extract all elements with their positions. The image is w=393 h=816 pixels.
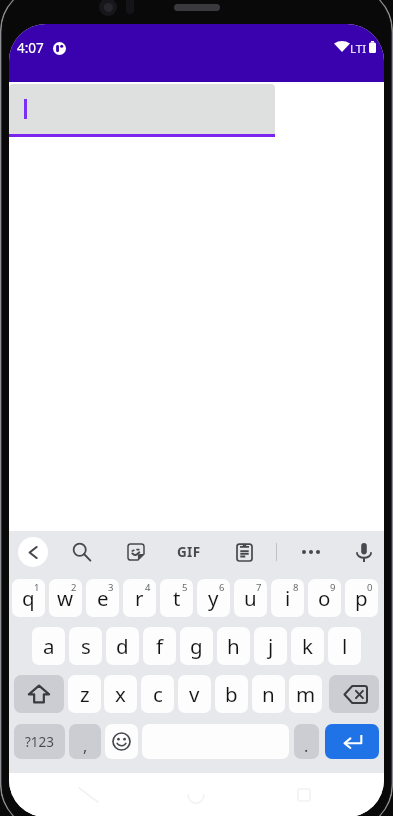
button[interactable]: a xyxy=(32,627,65,665)
staticText: 4:07 xyxy=(17,39,44,57)
button[interactable]: b xyxy=(215,675,248,713)
staticText: p xyxy=(355,584,368,612)
staticText: g xyxy=(190,632,203,660)
staticText: e xyxy=(97,584,109,612)
staticText: c xyxy=(153,680,163,708)
button[interactable]: e xyxy=(86,579,119,617)
button[interactable]: g xyxy=(180,627,213,665)
button[interactable]: m xyxy=(289,675,322,713)
staticText: y xyxy=(208,584,219,612)
button[interactable]: j xyxy=(254,627,287,665)
staticText: u xyxy=(244,584,257,612)
button[interactable]: u xyxy=(234,579,267,617)
button[interactable]: Enter xyxy=(325,724,379,759)
staticText: a xyxy=(43,632,55,660)
button[interactable]: x xyxy=(104,675,137,713)
staticText: 6 xyxy=(219,581,225,594)
button[interactable]: Clipboard xyxy=(229,537,259,567)
staticText: 1 xyxy=(34,581,40,594)
button[interactable]: i xyxy=(271,579,304,617)
staticText: 5 xyxy=(182,581,188,594)
button[interactable]: . xyxy=(294,724,319,759)
button[interactable]: h xyxy=(217,627,250,665)
staticText: b xyxy=(225,680,238,708)
button[interactable]: Search xyxy=(67,537,97,567)
button[interactable]: l xyxy=(328,627,361,665)
staticText: , xyxy=(83,735,88,757)
staticText: l xyxy=(342,632,348,660)
staticText: d xyxy=(116,632,129,660)
button[interactable]: z xyxy=(68,675,101,713)
button[interactable]: Emoji xyxy=(105,724,138,759)
button[interactable]: Voice input xyxy=(349,537,379,567)
button[interactable]: w xyxy=(49,579,82,617)
button[interactable] xyxy=(9,84,275,135)
button[interactable]: Stickers xyxy=(121,537,151,567)
staticText: GIF xyxy=(177,543,201,561)
button[interactable]: c xyxy=(141,675,174,713)
staticText: o xyxy=(318,584,331,612)
button[interactable]: p xyxy=(345,579,378,617)
button[interactable]: More options xyxy=(296,537,326,567)
staticText: ?123 xyxy=(25,733,55,751)
button[interactable]: ?123 xyxy=(14,724,65,759)
staticText: z xyxy=(80,680,90,708)
staticText: LTI xyxy=(350,41,367,57)
staticText: . xyxy=(304,735,309,757)
button[interactable]: GIF xyxy=(174,537,204,567)
button[interactable]: v xyxy=(178,675,211,713)
staticText: 8 xyxy=(293,581,299,594)
staticText: 9 xyxy=(330,581,336,594)
button[interactable]: r xyxy=(123,579,156,617)
staticText: j xyxy=(268,632,274,660)
button[interactable]: n xyxy=(252,675,285,713)
staticText: 4 xyxy=(145,581,151,594)
staticText: r xyxy=(135,584,144,612)
button[interactable]: q xyxy=(12,579,45,617)
staticText: 2 xyxy=(71,581,77,594)
button[interactable]: d xyxy=(106,627,139,665)
staticText: 7 xyxy=(256,581,262,594)
button[interactable]: f xyxy=(143,627,176,665)
staticText: x xyxy=(115,680,126,708)
button[interactable]: Back xyxy=(18,537,48,567)
button[interactable]: Backspace xyxy=(329,675,379,713)
staticText: k xyxy=(302,632,313,660)
button[interactable]: , xyxy=(69,724,101,759)
staticText: v xyxy=(189,680,200,708)
staticText: n xyxy=(262,680,275,708)
staticText: m xyxy=(296,680,316,708)
button[interactable]: Shift xyxy=(14,675,64,713)
button[interactable]: s xyxy=(69,627,102,665)
staticText: t xyxy=(173,584,181,612)
button[interactable]: t xyxy=(160,579,193,617)
staticText: 3 xyxy=(108,581,114,594)
button[interactable]: k xyxy=(291,627,324,665)
staticText: w xyxy=(57,584,74,612)
staticText: i xyxy=(285,584,291,612)
button[interactable]: o xyxy=(308,579,341,617)
button[interactable]: y xyxy=(197,579,230,617)
staticText: s xyxy=(81,632,91,660)
staticText: 0 xyxy=(367,581,373,594)
staticText: q xyxy=(22,584,35,612)
staticText: h xyxy=(227,632,240,660)
staticText: f xyxy=(156,632,164,660)
